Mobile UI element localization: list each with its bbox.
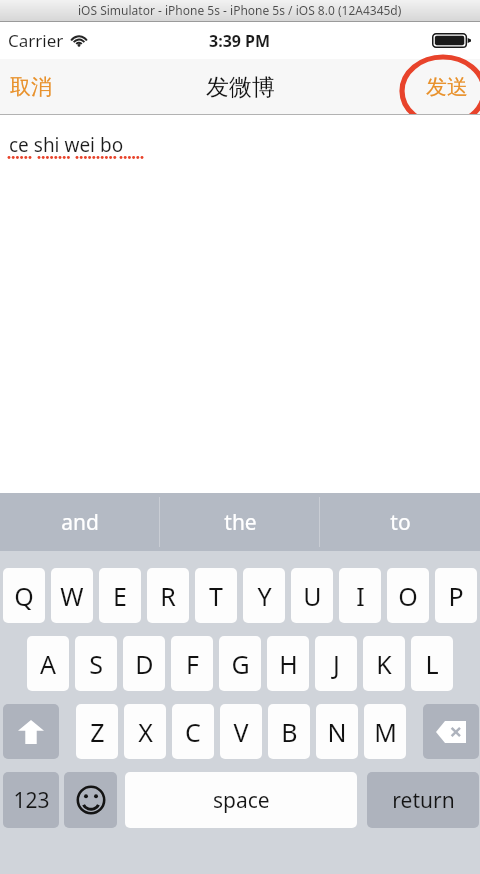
button[interactable]: D bbox=[123, 636, 165, 691]
button[interactable]: A bbox=[27, 636, 69, 691]
staticText: 3:39 PM bbox=[209, 30, 271, 52]
staticText: Q bbox=[14, 579, 34, 613]
button[interactable]: Emoji bbox=[64, 772, 117, 828]
staticText: K bbox=[376, 647, 392, 681]
staticText: 发微博 bbox=[206, 73, 275, 102]
button[interactable]: S bbox=[75, 636, 117, 691]
button[interactable]: T bbox=[195, 568, 237, 623]
button[interactable]: 123 bbox=[3, 772, 59, 828]
button[interactable]: return bbox=[367, 772, 479, 828]
staticText: ce shi wei bo bbox=[9, 132, 124, 158]
staticText: D bbox=[135, 647, 154, 681]
button[interactable]: J bbox=[315, 636, 357, 691]
button[interactable]: I bbox=[339, 568, 381, 623]
button[interactable]: K bbox=[363, 636, 405, 691]
staticText: 123 bbox=[13, 786, 50, 815]
button[interactable]: C bbox=[172, 704, 214, 759]
button[interactable]: W bbox=[51, 568, 93, 623]
button[interactable]: Shift bbox=[3, 704, 59, 759]
staticText: return bbox=[392, 786, 455, 815]
staticText: 取消 bbox=[10, 74, 52, 100]
button[interactable]: M bbox=[364, 704, 406, 759]
staticText: H bbox=[279, 647, 298, 681]
staticText: to bbox=[390, 508, 411, 537]
button[interactable]: X bbox=[124, 704, 166, 759]
button[interactable]: E bbox=[99, 568, 141, 623]
button[interactable]: U bbox=[291, 568, 333, 623]
button[interactable]: Backspace bbox=[423, 704, 479, 759]
button[interactable]: H bbox=[267, 636, 309, 691]
button[interactable]: G bbox=[219, 636, 261, 691]
staticText: O bbox=[398, 579, 418, 613]
staticText: Z bbox=[90, 715, 105, 749]
staticText: G bbox=[231, 647, 250, 681]
button[interactable]: V bbox=[220, 704, 262, 759]
button[interactable]: to bbox=[320, 493, 480, 551]
staticText: P bbox=[448, 579, 464, 613]
staticText: C bbox=[185, 715, 201, 749]
button[interactable]: the bbox=[160, 493, 320, 551]
staticText: F bbox=[186, 647, 199, 681]
button[interactable]: Y bbox=[243, 568, 285, 623]
button[interactable]: 取消 bbox=[0, 66, 64, 108]
button[interactable]: L bbox=[411, 636, 453, 691]
button[interactable]: O bbox=[387, 568, 429, 623]
staticText: Carrier bbox=[8, 29, 64, 52]
staticText: iOS Simulator - iPhone 5s - iPhone 5s / … bbox=[78, 2, 402, 18]
staticText: Y bbox=[257, 579, 272, 613]
staticText: L bbox=[425, 647, 439, 681]
button[interactable]: R bbox=[147, 568, 189, 623]
staticText: 发送 bbox=[426, 74, 468, 100]
staticText: the bbox=[224, 508, 257, 537]
button[interactable]: N bbox=[316, 704, 358, 759]
staticText: U bbox=[303, 579, 322, 613]
staticText: R bbox=[160, 579, 176, 613]
staticText: and bbox=[61, 508, 99, 537]
staticText: B bbox=[281, 715, 298, 749]
staticText: space bbox=[213, 786, 270, 815]
staticText: A bbox=[40, 647, 56, 681]
staticText: T bbox=[209, 579, 223, 613]
button[interactable]: P bbox=[435, 568, 477, 623]
staticText: I bbox=[356, 579, 365, 613]
staticText: N bbox=[327, 715, 347, 749]
button[interactable]: space bbox=[125, 772, 357, 828]
button[interactable]: Q bbox=[3, 568, 45, 623]
staticText: E bbox=[113, 579, 127, 613]
staticText: X bbox=[138, 715, 153, 749]
staticText: S bbox=[89, 647, 103, 681]
button[interactable]: and bbox=[0, 493, 160, 551]
button[interactable]: Z bbox=[76, 704, 118, 759]
button[interactable]: F bbox=[171, 636, 213, 691]
staticText: J bbox=[333, 647, 340, 681]
staticText: V bbox=[233, 715, 249, 749]
button[interactable]: B bbox=[268, 704, 310, 759]
staticText: W bbox=[60, 579, 84, 613]
staticText: M bbox=[374, 715, 397, 749]
button[interactable]: 发送 bbox=[414, 66, 480, 108]
